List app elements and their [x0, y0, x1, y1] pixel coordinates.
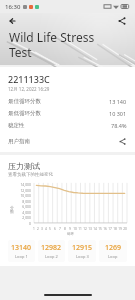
staticText: 14 — [93, 227, 97, 231]
staticText: 稳定性 — [8, 122, 25, 129]
staticText: 18 — [113, 227, 117, 231]
staticText: 15 — [98, 227, 102, 231]
staticText: 8,000 — [15, 199, 31, 204]
staticText: 20 — [123, 227, 127, 231]
staticText: 分 数 — [10, 205, 14, 215]
button[interactable]: 用户指南 — [8, 136, 127, 146]
staticText: 0 — [15, 221, 31, 226]
staticText: 13140 — [11, 243, 32, 253]
staticText: 压力测试 — [8, 161, 40, 171]
staticText: 2211133C — [8, 73, 50, 85]
staticText: 最佳循环分数 — [8, 98, 41, 105]
staticText: Loop 3 — [76, 254, 89, 259]
button[interactable]: 13140 — [8, 240, 35, 262]
staticText: Wild Life Stress Test — [9, 29, 95, 60]
staticText: 17 — [108, 227, 112, 231]
staticText: 5 — [49, 227, 51, 231]
staticText: 16:30 — [5, 3, 21, 11]
staticText: 10,000 — [15, 193, 31, 198]
staticText: 6,000 — [15, 204, 31, 209]
staticText: 13 — [88, 227, 92, 231]
staticText: 7 — [59, 227, 61, 231]
button[interactable]: Back — [6, 14, 20, 28]
staticText: 78.4% — [111, 122, 127, 129]
staticText: 2,000 — [15, 215, 31, 220]
staticText: 16 — [103, 227, 107, 231]
button[interactable]: 12982 — [38, 240, 65, 262]
staticText: 10 — [73, 227, 77, 231]
staticText: 1269 — [105, 243, 122, 253]
staticText: 2 — [37, 227, 39, 231]
staticText: 12,000 — [15, 188, 31, 193]
staticText: Loop — [108, 254, 118, 259]
staticText: 11 — [78, 227, 82, 231]
staticText: 循环 — [67, 232, 75, 237]
staticText: 12915 — [72, 243, 93, 253]
staticText: 10 301 — [109, 110, 127, 117]
staticText: 4,000 — [15, 210, 31, 215]
button[interactable]: Share — [115, 14, 129, 28]
staticText: 最低循环分数 — [8, 110, 41, 117]
staticText: Loop 2 — [45, 254, 58, 259]
button[interactable]: 1269 — [99, 240, 127, 262]
staticText: 12982 — [41, 243, 62, 253]
staticText: 14,000 — [15, 182, 31, 187]
staticText: 6 — [54, 227, 56, 231]
staticText: 12 — [83, 227, 87, 231]
staticText: 19 — [118, 227, 122, 231]
staticText: 3 — [41, 227, 43, 231]
staticText: 4 — [45, 227, 47, 231]
staticText: 9 — [69, 227, 71, 231]
staticText: Loop 1 — [15, 254, 28, 259]
staticText: 8 — [64, 227, 66, 231]
staticText: 13 140 — [109, 98, 127, 105]
staticText: 1 — [33, 227, 35, 231]
staticText: 查看负载下的性能变化 — [8, 172, 53, 178]
staticText: 12月 12, 2022 16:29 — [8, 86, 50, 92]
staticText: 用户指南 — [8, 138, 30, 145]
button[interactable]: 12915 — [68, 240, 96, 262]
